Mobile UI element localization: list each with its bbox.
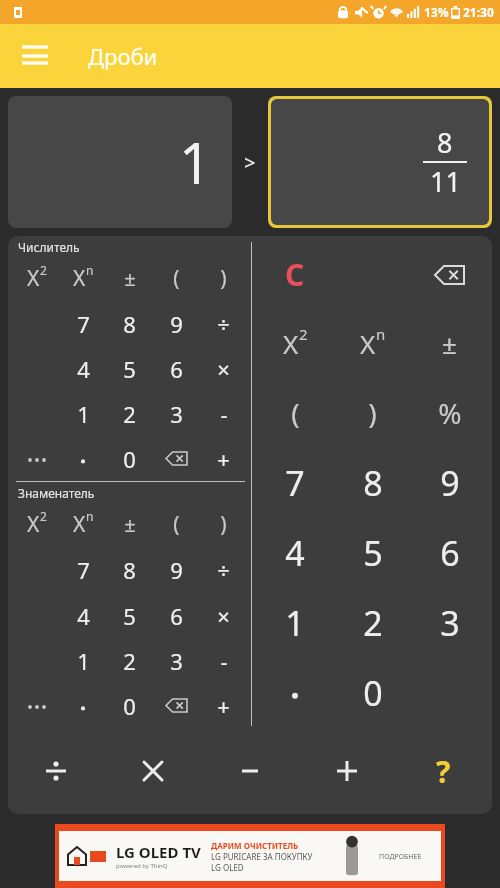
button[interactable]: ÷ bbox=[200, 301, 247, 346]
staticText: 8 bbox=[123, 309, 136, 339]
button[interactable]: X bbox=[256, 309, 334, 378]
staticText: ? bbox=[436, 751, 451, 792]
button[interactable]: ÷ bbox=[200, 547, 247, 593]
button[interactable]: 7 bbox=[256, 448, 334, 518]
button[interactable]: X bbox=[60, 501, 106, 547]
button[interactable]: - bbox=[200, 391, 247, 436]
button[interactable]: X bbox=[60, 255, 106, 301]
button[interactable]: + bbox=[200, 436, 247, 481]
button[interactable]: 6 bbox=[411, 518, 488, 588]
button[interactable]: ) bbox=[200, 501, 247, 547]
button[interactable]: 4 bbox=[256, 518, 334, 588]
staticText: 5 bbox=[123, 354, 136, 384]
button[interactable] bbox=[60, 436, 106, 481]
staticText: × bbox=[217, 354, 230, 384]
button[interactable] bbox=[60, 683, 106, 728]
button[interactable]: Clear bbox=[256, 240, 334, 309]
button[interactable]: 1 bbox=[60, 638, 106, 683]
button[interactable]: - bbox=[200, 638, 247, 683]
button[interactable]: + bbox=[200, 683, 247, 728]
button[interactable]: ) bbox=[334, 378, 411, 448]
button[interactable]: 3 bbox=[153, 638, 200, 683]
button[interactable]: 0 bbox=[106, 436, 153, 481]
button[interactable]: 4 bbox=[60, 346, 106, 391]
staticText: × bbox=[217, 601, 230, 631]
staticText: powered by ThinQ bbox=[116, 862, 168, 870]
button[interactable]: 8 bbox=[271, 99, 489, 225]
button[interactable]: 1 bbox=[60, 391, 106, 436]
staticText: ± bbox=[442, 326, 457, 361]
button[interactable]: 0 bbox=[334, 658, 411, 728]
button[interactable]: 7 bbox=[60, 301, 106, 346]
button[interactable]: Divide bbox=[8, 728, 104, 814]
button[interactable]: 2 bbox=[106, 638, 153, 683]
button[interactable]: 1 bbox=[256, 588, 334, 658]
staticText: LG OLED TV bbox=[116, 842, 201, 862]
button[interactable]: ) bbox=[200, 255, 247, 301]
button[interactable]: Plus bbox=[298, 728, 395, 814]
button[interactable]: LG OLED TV bbox=[55, 824, 445, 888]
button[interactable]: 4 bbox=[60, 593, 106, 638]
button[interactable]: Multiply bbox=[104, 728, 201, 814]
button[interactable]: ( bbox=[256, 378, 334, 448]
button[interactable]: % bbox=[411, 378, 488, 448]
button[interactable]: ± bbox=[411, 309, 488, 378]
staticText: 21:30 bbox=[463, 4, 494, 20]
staticText: > bbox=[244, 149, 256, 176]
staticText: n bbox=[86, 262, 94, 278]
staticText: n bbox=[86, 508, 94, 524]
button[interactable]: 5 bbox=[106, 593, 153, 638]
button[interactable]: 6 bbox=[153, 593, 200, 638]
staticText: 2 bbox=[40, 262, 47, 278]
button[interactable]: X bbox=[334, 309, 411, 378]
button[interactable]: 8 bbox=[334, 448, 411, 518]
button[interactable]: More bbox=[14, 436, 60, 481]
button[interactable]: Backspace bbox=[411, 240, 488, 309]
staticText: 2 bbox=[40, 508, 47, 524]
staticText: 3 bbox=[440, 600, 460, 646]
button[interactable]: 1 bbox=[8, 96, 232, 228]
button[interactable]: ± bbox=[106, 255, 153, 301]
button[interactable]: 2 bbox=[106, 391, 153, 436]
button[interactable]: Backspace bbox=[153, 683, 200, 728]
button[interactable]: 7 bbox=[60, 547, 106, 593]
button[interactable]: Decimal point bbox=[256, 658, 334, 728]
staticText: ( bbox=[173, 264, 180, 293]
staticText: 5 bbox=[363, 530, 383, 576]
button[interactable]: ± bbox=[106, 501, 153, 547]
staticText: 5 bbox=[123, 601, 136, 631]
staticText: ÷ bbox=[217, 309, 230, 339]
button[interactable]: X bbox=[14, 255, 60, 301]
button[interactable]: 6 bbox=[153, 346, 200, 391]
button[interactable]: Open navigation menu bbox=[14, 35, 56, 77]
button[interactable]: 9 bbox=[153, 301, 200, 346]
button[interactable]: 5 bbox=[106, 346, 153, 391]
button[interactable]: × bbox=[200, 346, 247, 391]
staticText: Знаменатель bbox=[18, 485, 95, 501]
button[interactable]: Backspace bbox=[153, 436, 200, 481]
staticText: + bbox=[217, 691, 230, 721]
button[interactable]: 5 bbox=[334, 518, 411, 588]
button[interactable]: × bbox=[200, 593, 247, 638]
button[interactable]: 8 bbox=[106, 301, 153, 346]
staticText: 4 bbox=[285, 530, 305, 576]
button[interactable]: 9 bbox=[153, 547, 200, 593]
staticText: 6 bbox=[170, 601, 183, 631]
staticText: ( bbox=[173, 510, 180, 539]
button[interactable]: 3 bbox=[411, 588, 488, 658]
button[interactable]: 3 bbox=[153, 391, 200, 436]
staticText: LG PURICARE ЗА ПОКУПКУ bbox=[211, 851, 313, 862]
button[interactable]: Help bbox=[395, 728, 492, 814]
button[interactable]: 9 bbox=[411, 448, 488, 518]
button[interactable]: ( bbox=[153, 255, 200, 301]
button[interactable]: ( bbox=[153, 501, 200, 547]
button[interactable]: Minus bbox=[201, 728, 298, 814]
button[interactable]: 2 bbox=[334, 588, 411, 658]
staticText: 6 bbox=[440, 530, 460, 576]
staticText: X bbox=[73, 264, 86, 293]
button[interactable]: More bbox=[14, 683, 60, 728]
staticText: 7 bbox=[77, 309, 90, 339]
button[interactable]: X bbox=[14, 501, 60, 547]
button[interactable]: 8 bbox=[106, 547, 153, 593]
button[interactable]: 0 bbox=[106, 683, 153, 728]
